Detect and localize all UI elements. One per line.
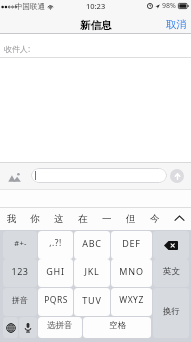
staticText: DEF bbox=[122, 237, 141, 249]
staticText: 新信息 bbox=[80, 19, 112, 32]
button[interactable]: DEF bbox=[111, 231, 152, 259]
button[interactable]: Send bbox=[170, 169, 184, 183]
staticText: GHI bbox=[46, 265, 65, 277]
staticText: 中国联通 bbox=[15, 2, 45, 11]
staticText: 选拼音 bbox=[47, 320, 73, 331]
staticText: 取消 bbox=[166, 18, 187, 31]
button[interactable]: 今 bbox=[143, 207, 167, 230]
button[interactable]: TUV bbox=[74, 288, 110, 316]
button[interactable]: 换行 bbox=[153, 288, 189, 338]
button[interactable]: More candidates bbox=[167, 207, 191, 230]
button[interactable] bbox=[31, 168, 167, 183]
staticText: 我 bbox=[7, 213, 17, 225]
button[interactable]: WXYZ bbox=[111, 288, 152, 316]
button[interactable]: 但 bbox=[119, 207, 143, 230]
button[interactable]: 这 bbox=[47, 207, 71, 230]
staticText: 98% bbox=[162, 1, 176, 11]
staticText: 一 bbox=[102, 213, 112, 225]
staticText: 英文 bbox=[163, 266, 180, 277]
button[interactable]: Switch keyboard bbox=[3, 317, 18, 338]
button[interactable]: 空格 bbox=[83, 317, 151, 338]
button[interactable]: Dictation bbox=[19, 317, 37, 338]
button[interactable]: Delete bbox=[153, 231, 189, 259]
staticText: 换行 bbox=[163, 306, 180, 317]
staticText: ABC bbox=[82, 237, 102, 249]
staticText: ,.?! bbox=[49, 237, 62, 249]
button[interactable]: 选拼音 bbox=[38, 317, 82, 338]
button[interactable]: 一 bbox=[95, 207, 119, 230]
staticText: 你 bbox=[30, 213, 40, 225]
button[interactable]: 英文 bbox=[153, 259, 189, 287]
button[interactable]: 123 bbox=[3, 259, 37, 287]
button[interactable]: 我 bbox=[0, 207, 23, 230]
staticText: 但 bbox=[126, 213, 136, 225]
staticText: 123 bbox=[11, 265, 29, 277]
staticText: 收件人: bbox=[4, 43, 31, 54]
staticText: #+- bbox=[14, 238, 27, 248]
staticText: 拼音 bbox=[12, 295, 28, 305]
staticText: MNO bbox=[119, 265, 144, 277]
staticText: WXYZ bbox=[119, 294, 144, 306]
button[interactable]: GHI bbox=[38, 259, 73, 287]
staticText: 这 bbox=[54, 213, 64, 225]
button[interactable]: 取消 bbox=[161, 15, 191, 36]
staticText: PQRS bbox=[44, 294, 68, 306]
button[interactable]: Camera bbox=[4, 169, 24, 185]
button[interactable]: 在 bbox=[71, 207, 95, 230]
staticText: 10:23 bbox=[86, 1, 106, 11]
staticText: JKL bbox=[84, 265, 100, 277]
staticText: 空格 bbox=[109, 320, 126, 331]
button[interactable]: MNO bbox=[111, 259, 152, 287]
staticText: 在 bbox=[78, 213, 88, 225]
button[interactable]: 收件人: bbox=[0, 34, 191, 58]
button[interactable]: 拼音 bbox=[3, 288, 37, 316]
button[interactable]: JKL bbox=[74, 259, 110, 287]
button[interactable]: ,.?! bbox=[38, 231, 73, 259]
staticText: TUV bbox=[82, 294, 102, 306]
staticText: 今 bbox=[150, 213, 160, 225]
button[interactable]: PQRS bbox=[38, 288, 73, 316]
button[interactable]: 你 bbox=[23, 207, 47, 230]
button[interactable]: ABC bbox=[74, 231, 110, 259]
button[interactable]: #+- bbox=[3, 231, 37, 259]
